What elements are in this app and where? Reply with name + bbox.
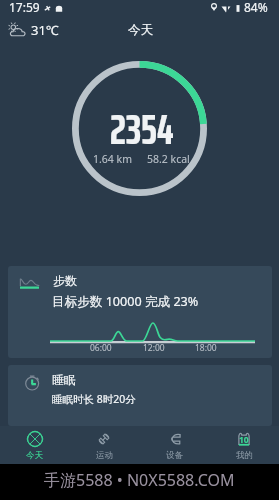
staticText: 17:59 bbox=[9, 0, 40, 15]
staticText: 运动 bbox=[96, 450, 113, 461]
button[interactable]: 设备 bbox=[139, 426, 209, 464]
staticText: 31℃ bbox=[31, 21, 59, 39]
staticText: 18:00 bbox=[195, 342, 217, 354]
staticText: 目标步数 10000 完成 23% bbox=[52, 293, 199, 310]
staticText: 12:00 bbox=[143, 342, 165, 354]
staticText: 58.2 kcal bbox=[147, 152, 190, 166]
staticText: 2354 bbox=[110, 96, 174, 162]
staticText: 手游5588 • N0X5588.COM bbox=[44, 469, 235, 491]
staticText: 睡眠 bbox=[52, 372, 76, 387]
button[interactable]: 今天 bbox=[128, 22, 153, 38]
staticText: 我的 bbox=[236, 450, 253, 461]
button[interactable]: 步数 bbox=[8, 266, 272, 358]
button[interactable]: 今天 bbox=[0, 426, 69, 464]
staticText: 今天 bbox=[128, 22, 153, 38]
button[interactable]: 运动 bbox=[69, 426, 139, 464]
button[interactable]: 睡眠 bbox=[8, 365, 272, 426]
staticText: 1.64 km bbox=[93, 152, 132, 166]
button[interactable]: 10 bbox=[209, 426, 279, 464]
staticText: 今天 bbox=[26, 450, 43, 461]
staticText: 10 bbox=[239, 434, 249, 446]
button[interactable]: 31℃ bbox=[7, 21, 59, 39]
staticText: 设备 bbox=[166, 450, 183, 461]
staticText: 步数 bbox=[53, 273, 77, 288]
staticText: 84% bbox=[244, 0, 268, 15]
staticText: 06:00 bbox=[90, 342, 112, 354]
staticText: 睡眠时长 8时20分 bbox=[52, 392, 136, 406]
